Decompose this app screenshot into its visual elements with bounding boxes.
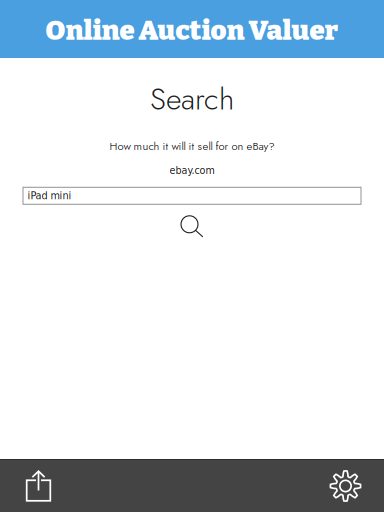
button[interactable]: Search [170,210,213,242]
staticText: Online Auction Valuer [45,14,338,47]
button[interactable]: Share [0,461,63,510]
staticText: Search [150,77,234,121]
button[interactable]: Settings [318,462,384,509]
button[interactable]: iPad mini [23,187,361,204]
staticText: iPad mini [27,190,71,201]
staticText: ebay.com [169,165,214,176]
staticText: How much it will it sell for on eBay? [109,138,274,154]
